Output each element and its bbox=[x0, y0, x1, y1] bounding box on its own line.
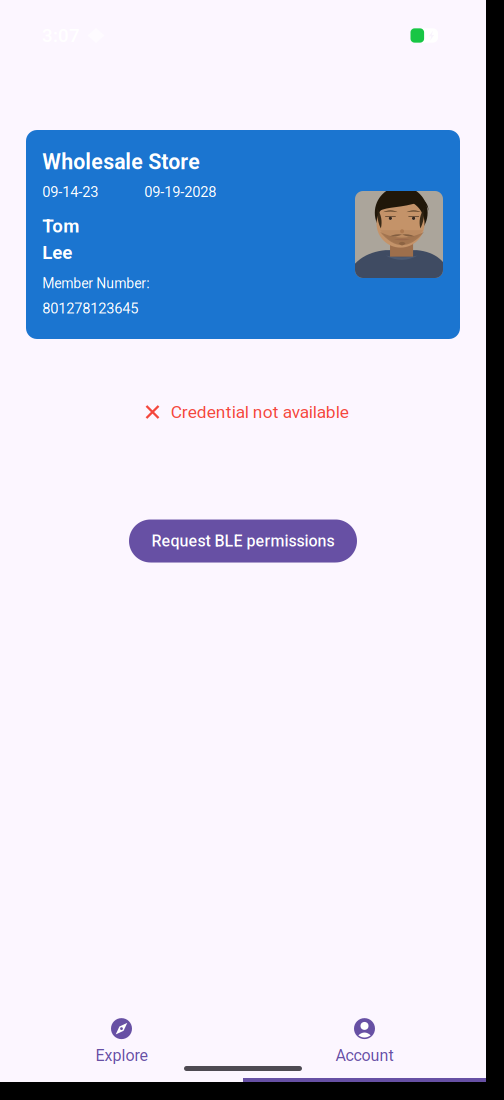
staticText: Credential not available bbox=[171, 402, 349, 422]
staticText: 09-14-23 bbox=[42, 183, 98, 201]
button[interactable]: Explore bbox=[0, 1005, 243, 1077]
staticText: Member Number: bbox=[42, 275, 149, 292]
button[interactable]: Request BLE permissions bbox=[129, 519, 357, 562]
staticText: 801278123645 bbox=[42, 300, 138, 317]
staticText: Tom bbox=[42, 215, 79, 237]
staticText: Wholesale Store bbox=[42, 149, 200, 174]
staticText: 09-19-2028 bbox=[144, 183, 216, 201]
staticText: Explore bbox=[95, 1046, 147, 1065]
button[interactable]: Account bbox=[243, 1005, 486, 1077]
staticText: Lee bbox=[42, 242, 72, 263]
staticText: Account bbox=[335, 1046, 393, 1065]
staticText: Request BLE permissions bbox=[151, 532, 334, 550]
staticText: 3:07 bbox=[42, 25, 80, 46]
